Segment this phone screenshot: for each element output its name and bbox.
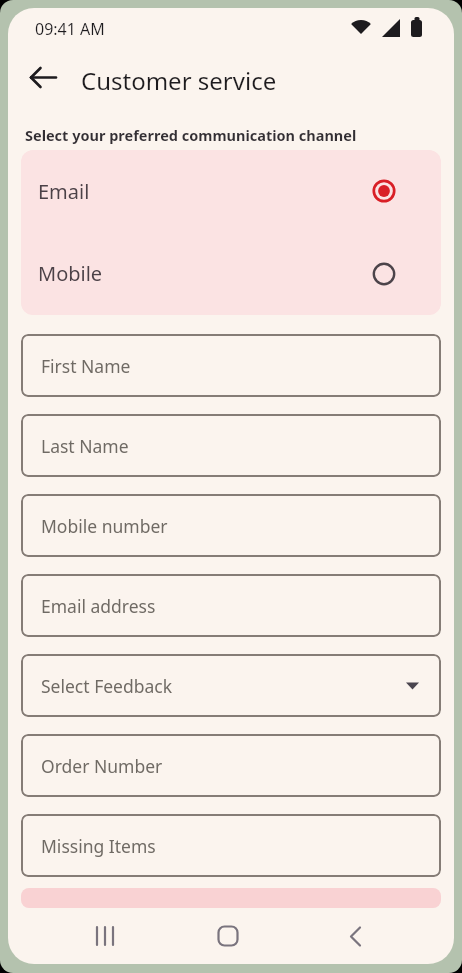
button[interactable]: Mobile number — [21, 494, 441, 557]
staticText: Order Number — [41, 754, 163, 778]
staticText: Email — [38, 178, 90, 205]
button[interactable]: Missing Items — [21, 814, 441, 877]
button[interactable]: Mobile — [21, 232, 441, 315]
button[interactable]: First Name — [21, 334, 441, 397]
staticText: Missing Items — [41, 834, 156, 858]
button[interactable] — [214, 918, 246, 954]
button[interactable] — [341, 918, 373, 954]
staticText: Email address — [41, 594, 156, 618]
staticText: Select Feedback — [41, 674, 173, 698]
button[interactable]: Email address — [21, 574, 441, 637]
staticText: First Name — [41, 354, 131, 378]
button[interactable]: Order Number — [21, 734, 441, 797]
staticText: Customer service — [81, 64, 277, 97]
button[interactable] — [89, 918, 121, 954]
staticText: 09:41 AM — [35, 18, 105, 38]
button[interactable]: Last Name — [21, 414, 441, 477]
staticText: Last Name — [41, 434, 129, 458]
button[interactable]: Select Feedback — [21, 654, 441, 717]
staticText: Select your preferred communication chan… — [25, 125, 357, 145]
staticText: Mobile number — [41, 514, 168, 538]
staticText: Mobile — [38, 260, 103, 287]
button[interactable] — [26, 58, 62, 94]
button[interactable]: Email — [21, 150, 441, 232]
